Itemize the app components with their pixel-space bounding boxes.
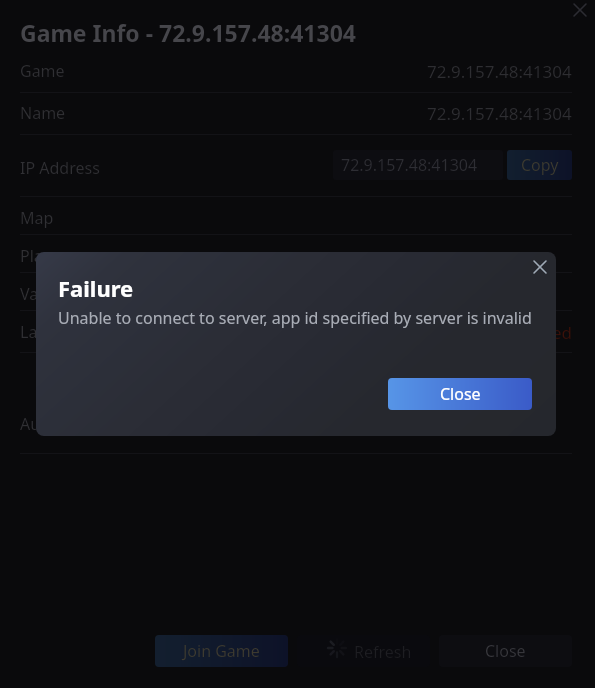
- staticText: Close: [485, 640, 526, 662]
- staticText: Latency: [20, 321, 78, 343]
- staticText: Join Game: [183, 640, 260, 662]
- button[interactable]: Close: [388, 378, 532, 410]
- staticText: Players: [20, 245, 75, 267]
- button[interactable]: Close window: [566, 0, 594, 24]
- button[interactable]: Refresh: [297, 635, 430, 667]
- button[interactable]: Close: [439, 635, 572, 667]
- staticText: Not Supported: [454, 321, 572, 344]
- staticText: 72.9.157.48:41304: [427, 60, 572, 83]
- button[interactable]: Dismiss: [526, 253, 554, 281]
- staticText: IP Address: [20, 157, 100, 179]
- staticText: Game: [20, 60, 65, 82]
- staticText: Close: [440, 383, 481, 405]
- staticText: 72.9.157.48:41304: [341, 154, 478, 176]
- staticText: Game Info - 72.9.157.48:41304: [20, 17, 356, 48]
- button[interactable]: Join Game: [155, 635, 288, 667]
- staticText: Auto Join: [20, 413, 88, 435]
- button[interactable]: Copy: [507, 150, 572, 180]
- staticText: Name: [20, 102, 66, 124]
- staticText: Unable to connect to server, app id spec…: [58, 307, 532, 329]
- staticText: 72.9.157.48:41304: [427, 102, 572, 125]
- staticText: Validated: [20, 283, 90, 305]
- staticText: Map: [20, 207, 54, 229]
- staticText: Refresh: [354, 641, 412, 663]
- staticText: Failure: [58, 273, 134, 303]
- staticText: Copy: [521, 154, 559, 176]
